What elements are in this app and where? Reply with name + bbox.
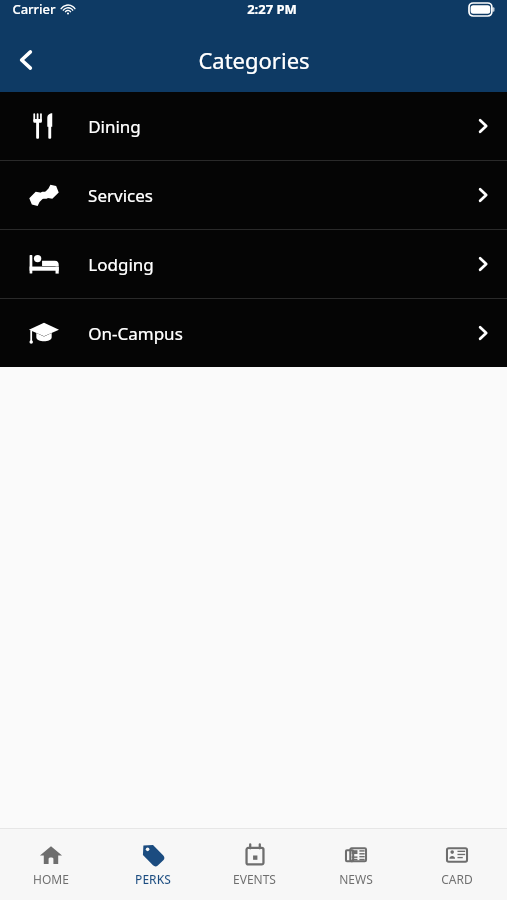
button[interactable]: PERKS xyxy=(102,829,204,900)
button[interactable]: HOME xyxy=(0,829,102,900)
button[interactable]: Lodging xyxy=(0,230,507,298)
button[interactable]: Dining xyxy=(0,92,507,160)
button[interactable]: NEWS xyxy=(305,829,406,900)
staticText: HOME xyxy=(33,871,69,887)
staticText: CARD xyxy=(441,871,473,887)
button[interactable]: On-Campus xyxy=(0,299,507,367)
staticText: 2:27 PM xyxy=(247,0,297,18)
staticText: PERKS xyxy=(135,871,171,887)
staticText: Carrier xyxy=(12,0,56,18)
staticText: Dining xyxy=(88,115,141,138)
staticText: NEWS xyxy=(339,871,373,887)
staticText: EVENTS xyxy=(233,871,276,887)
staticText: Lodging xyxy=(88,253,154,276)
button[interactable]: EVENTS xyxy=(204,829,305,900)
button[interactable]: Back xyxy=(0,34,52,86)
button[interactable]: CARD xyxy=(406,829,507,900)
button[interactable]: Services xyxy=(0,161,507,229)
staticText: Services xyxy=(88,184,153,207)
staticText: Categories xyxy=(198,45,310,75)
staticText: On-Campus xyxy=(88,322,183,345)
